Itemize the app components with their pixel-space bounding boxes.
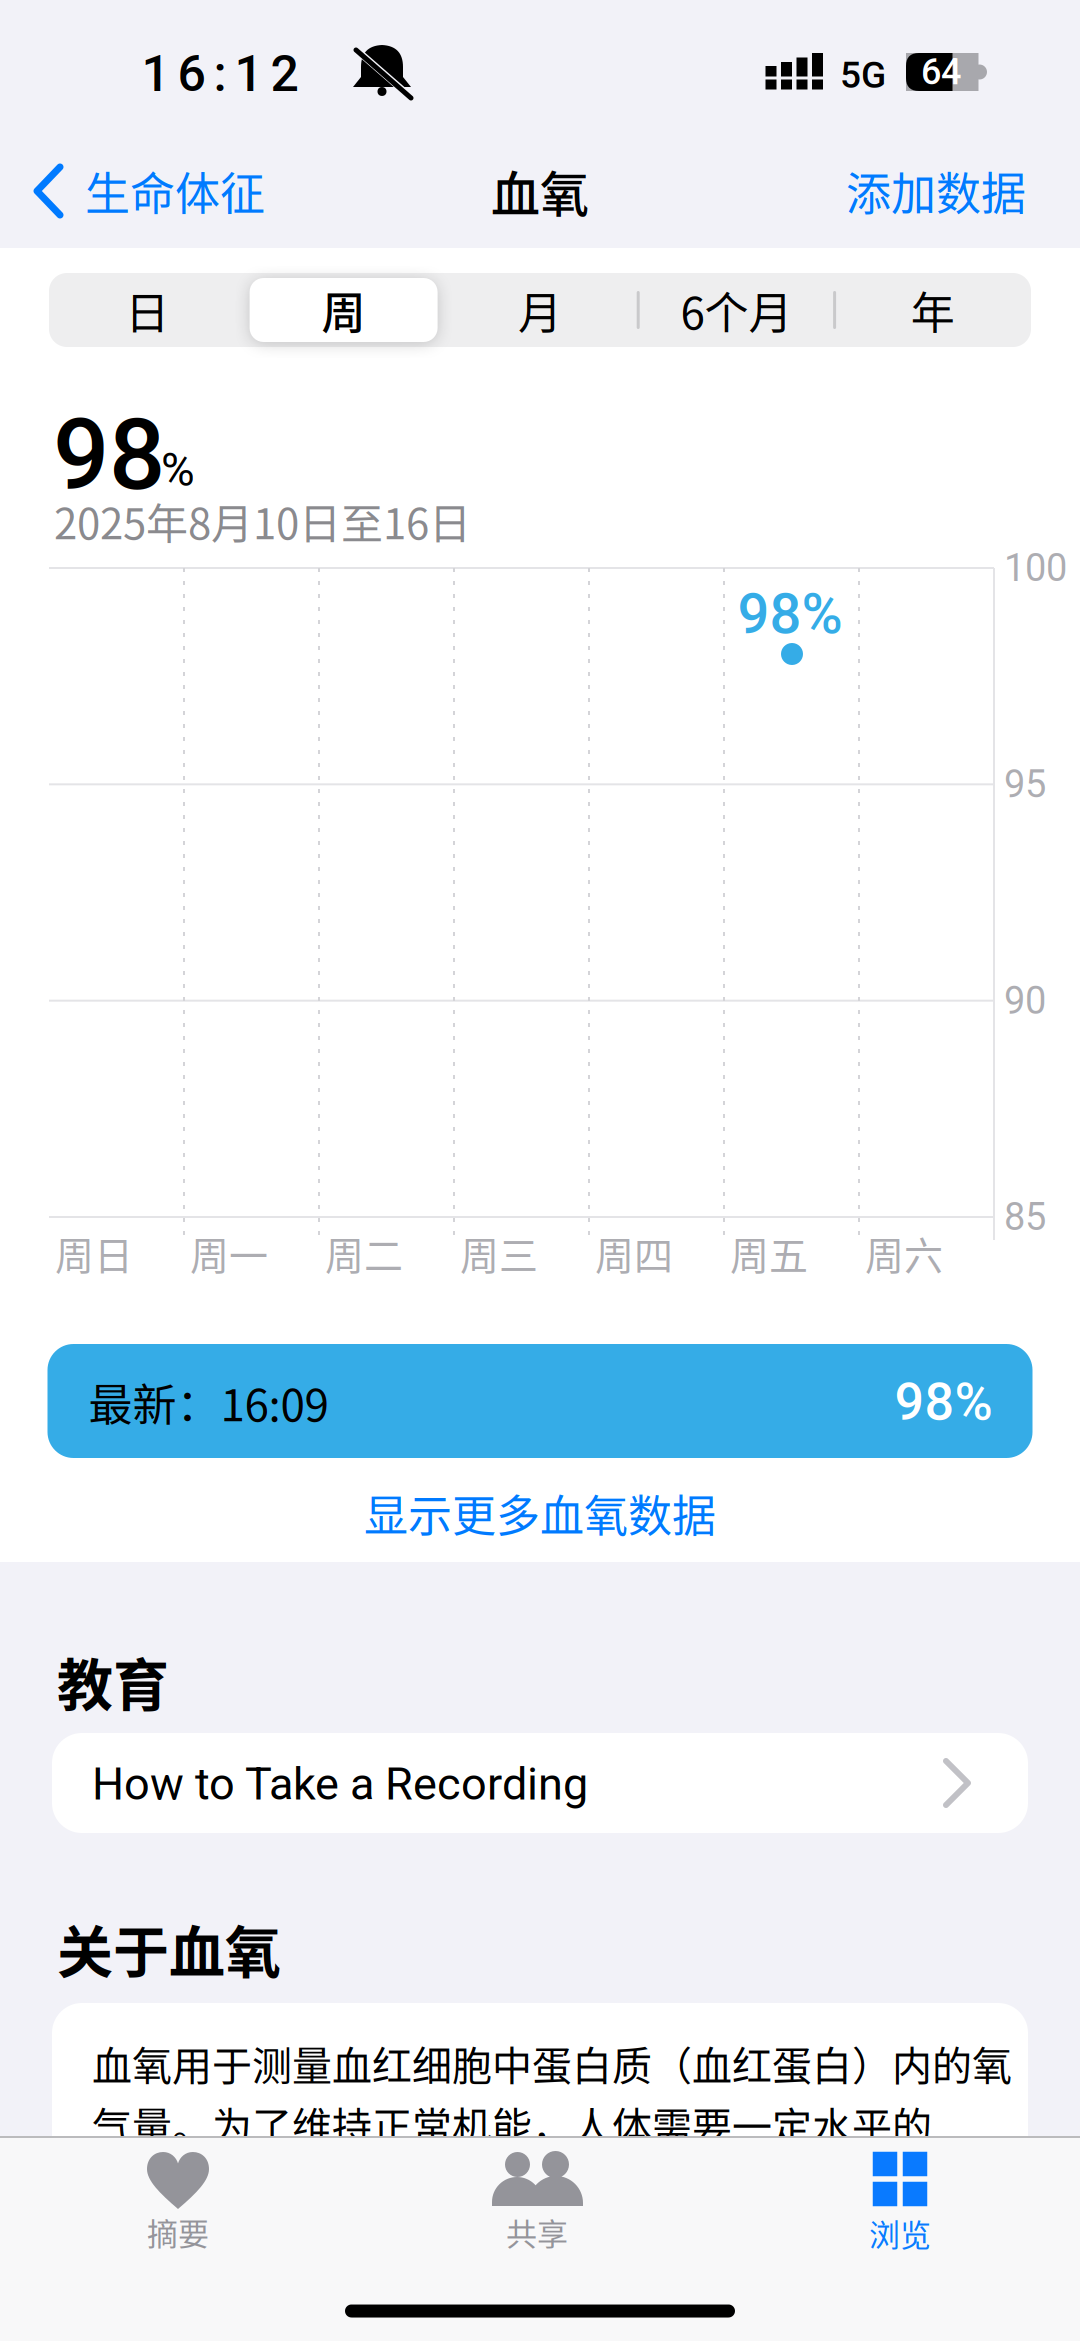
staticText: 日 xyxy=(125,278,169,342)
staticText: 周二 xyxy=(325,1225,403,1281)
staticText: 周五 xyxy=(730,1225,808,1281)
button[interactable]: 月 xyxy=(442,273,638,347)
staticText: 100 xyxy=(1004,546,1067,590)
button[interactable]: 浏览 xyxy=(750,2130,1050,2260)
staticText: 95 xyxy=(1004,762,1046,807)
button[interactable]: 最新：16:09 xyxy=(47,1344,1032,1458)
staticText: 年 xyxy=(911,278,955,342)
staticText: 16:12 xyxy=(141,45,298,103)
button[interactable]: 添加数据 xyxy=(726,146,1026,236)
button[interactable]: How to Take a Recording xyxy=(52,1733,1028,1833)
button[interactable]: 共享 xyxy=(387,2130,687,2260)
button[interactable]: 6个月 xyxy=(638,273,835,347)
staticText: 血氧 xyxy=(491,155,589,226)
staticText: 生命体征 xyxy=(85,158,265,224)
staticText: 关于血氧 xyxy=(57,1907,281,1989)
staticText: 98% xyxy=(737,581,842,647)
staticText: 周六 xyxy=(865,1225,943,1281)
button[interactable]: 生命体征 xyxy=(30,163,450,219)
staticText: 64 xyxy=(921,51,961,93)
staticText: 2025年8月10日至16日 xyxy=(54,491,471,551)
staticText: 90 xyxy=(1004,978,1046,1023)
staticText: 85 xyxy=(1004,1195,1046,1239)
staticText: 最新：16:09 xyxy=(88,1370,328,1434)
staticText: 共享 xyxy=(506,2210,568,2254)
staticText: 添加数据 xyxy=(846,158,1026,224)
staticText: % xyxy=(161,443,195,497)
staticText: 显示更多血氧数据 xyxy=(364,1481,716,1545)
staticText: 周日 xyxy=(55,1225,133,1281)
staticText: 周三 xyxy=(460,1225,538,1281)
staticText: 6个月 xyxy=(680,278,792,342)
button[interactable]: 周 xyxy=(245,273,442,347)
staticText: 98% xyxy=(894,1371,992,1432)
staticText: 5G xyxy=(840,53,886,97)
button[interactable]: 显示更多血氧数据 xyxy=(240,1473,840,1553)
staticText: How to Take a Recording xyxy=(92,1758,588,1810)
staticText: 月 xyxy=(518,278,562,342)
staticText: 98 xyxy=(53,397,165,513)
staticText: 周 xyxy=(322,278,366,342)
staticText: 周一 xyxy=(190,1225,268,1281)
button[interactable]: 摘要 xyxy=(28,2130,328,2260)
button[interactable]: 年 xyxy=(835,273,1031,347)
staticText: 气量。为了维持正常机能，人体需要一定水平的 xyxy=(92,2095,932,2153)
staticText: 血氧用于测量血红细胞中蛋白质（血红蛋白）内的氧 xyxy=(92,2034,1012,2092)
staticText: 周四 xyxy=(595,1225,673,1281)
staticText: 浏览 xyxy=(869,2211,931,2255)
staticText: 摘要 xyxy=(147,2210,209,2254)
staticText: 教育 xyxy=(57,1640,169,1722)
button[interactable]: 日 xyxy=(49,273,245,347)
